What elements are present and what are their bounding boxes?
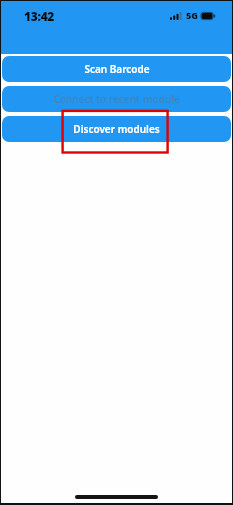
other: Cellular signal [170, 12, 183, 20]
other: Battery full [201, 12, 217, 20]
button[interactable]: Scan Barcode [2, 56, 231, 82]
staticText: Connect to recent module [53, 92, 180, 106]
staticText: 13:42 [24, 8, 55, 24]
button[interactable]: Discover modules [2, 116, 231, 142]
staticText: 5G [186, 9, 198, 21]
button[interactable]: Connect to recent module [2, 86, 231, 112]
staticText: Scan Barcode [84, 62, 150, 76]
staticText: Discover modules [73, 122, 160, 136]
